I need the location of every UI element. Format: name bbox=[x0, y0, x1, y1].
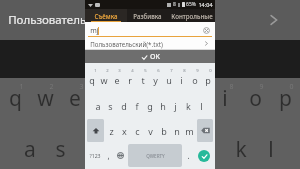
button[interactable]: k bbox=[183, 94, 194, 117]
staticText: Пользовательс bbox=[8, 12, 92, 28]
staticText: Контрольные bbox=[171, 12, 213, 20]
button[interactable]: Разбивка bbox=[127, 9, 168, 22]
button[interactable]: Shift bbox=[87, 119, 104, 142]
button[interactable]: a bbox=[92, 94, 103, 117]
staticText: r bbox=[128, 74, 132, 86]
staticText: m bbox=[185, 125, 194, 137]
staticText: u bbox=[189, 84, 202, 113]
staticText: p bbox=[279, 84, 292, 113]
staticText: 14:04 bbox=[198, 1, 213, 8]
button[interactable]: 1 bbox=[87, 68, 97, 92]
button[interactable]: Съёмка bbox=[85, 9, 127, 22]
button[interactable]: 7 bbox=[163, 68, 174, 92]
staticText: l bbox=[268, 135, 274, 164]
button[interactable]: 0 bbox=[202, 68, 213, 92]
staticText: q bbox=[89, 74, 95, 86]
staticText: p bbox=[205, 74, 211, 86]
staticText: 1 bbox=[19, 82, 24, 92]
button[interactable]: h bbox=[157, 94, 168, 117]
button[interactable]: Change language bbox=[115, 144, 126, 167]
staticText: a bbox=[24, 135, 36, 164]
staticText: 65% bbox=[186, 1, 196, 8]
staticText: 3 bbox=[118, 68, 121, 74]
staticText: y bbox=[153, 74, 158, 86]
staticText: f bbox=[135, 100, 139, 112]
staticText: 9 bbox=[196, 68, 199, 74]
staticText: d bbox=[121, 100, 127, 112]
button[interactable]: 5 bbox=[137, 68, 148, 92]
button[interactable]: Пользовательский(*.txt) bbox=[85, 37, 215, 50]
button[interactable]: mj bbox=[88, 24, 212, 37]
staticText: b bbox=[161, 125, 167, 137]
staticText: k bbox=[235, 135, 247, 164]
staticText: g bbox=[147, 100, 153, 112]
button[interactable]: x bbox=[119, 119, 130, 142]
staticText: n bbox=[174, 125, 180, 137]
button[interactable]: 4 bbox=[124, 68, 135, 92]
button[interactable]: ?123 bbox=[87, 144, 102, 167]
staticText: j bbox=[208, 135, 214, 164]
staticText: o bbox=[192, 74, 198, 86]
button[interactable]: QWERTY bbox=[128, 144, 182, 167]
button[interactable]: n bbox=[171, 119, 182, 142]
button[interactable]: d bbox=[118, 94, 129, 117]
staticText: j bbox=[174, 100, 177, 112]
staticText: g bbox=[145, 135, 158, 164]
button[interactable]: l bbox=[196, 94, 207, 117]
staticText: 5 bbox=[139, 82, 144, 92]
staticText: v bbox=[148, 125, 153, 137]
button[interactable]: 9 bbox=[189, 68, 200, 92]
staticText: d bbox=[85, 135, 98, 164]
button[interactable]: b bbox=[158, 119, 169, 142]
staticText: Пользовательский(*.txt) bbox=[90, 40, 163, 48]
staticText: Разбивка bbox=[133, 12, 162, 20]
staticText: f bbox=[117, 135, 125, 164]
staticText: l bbox=[200, 100, 203, 112]
staticText: x bbox=[122, 125, 127, 137]
button[interactable]: Open bbox=[266, 12, 282, 28]
button[interactable]: 8 bbox=[176, 68, 187, 92]
staticText: h bbox=[160, 100, 166, 112]
staticText: t bbox=[131, 84, 139, 113]
staticText: 8 bbox=[183, 68, 186, 74]
staticText: 5 bbox=[144, 68, 147, 74]
button[interactable]: z bbox=[106, 119, 117, 142]
staticText: a bbox=[95, 100, 101, 112]
button[interactable]: Backspace bbox=[197, 119, 213, 142]
staticText: z bbox=[109, 125, 114, 137]
staticText: e bbox=[69, 84, 81, 113]
button[interactable]: , bbox=[104, 144, 113, 167]
staticText: o bbox=[249, 84, 262, 113]
staticText: h bbox=[175, 135, 188, 164]
staticText: s bbox=[108, 100, 113, 112]
staticText: 6 bbox=[169, 82, 174, 92]
button[interactable]: c bbox=[132, 119, 143, 142]
button[interactable]: 2 bbox=[99, 68, 109, 92]
button[interactable]: f bbox=[131, 94, 142, 117]
staticText: t bbox=[141, 74, 145, 86]
button[interactable]: 3 bbox=[111, 68, 122, 92]
button[interactable]: Enter bbox=[195, 144, 213, 167]
staticText: 1 bbox=[94, 68, 97, 74]
button[interactable]: OK bbox=[85, 50, 215, 63]
button[interactable]: s bbox=[105, 94, 116, 117]
button[interactable]: g bbox=[144, 94, 155, 117]
staticText: 6 bbox=[157, 68, 160, 74]
button[interactable]: . bbox=[184, 144, 193, 167]
staticText: c bbox=[135, 125, 140, 137]
staticText: i bbox=[222, 84, 228, 113]
button[interactable]: m bbox=[184, 119, 195, 142]
staticText: 2 bbox=[106, 68, 109, 74]
button[interactable]: 6 bbox=[150, 68, 161, 92]
staticText: w bbox=[100, 74, 108, 86]
staticText: 8 bbox=[229, 82, 234, 92]
button[interactable]: v bbox=[145, 119, 156, 142]
staticText: QWERTY bbox=[146, 153, 165, 159]
staticText: y bbox=[160, 84, 171, 113]
button[interactable]: j bbox=[170, 94, 181, 117]
button[interactable]: Контрольные bbox=[168, 9, 215, 22]
staticText: , bbox=[107, 150, 110, 161]
staticText: w bbox=[37, 84, 54, 113]
button[interactable]: Clear text bbox=[203, 27, 210, 34]
staticText: 3 bbox=[79, 82, 84, 92]
